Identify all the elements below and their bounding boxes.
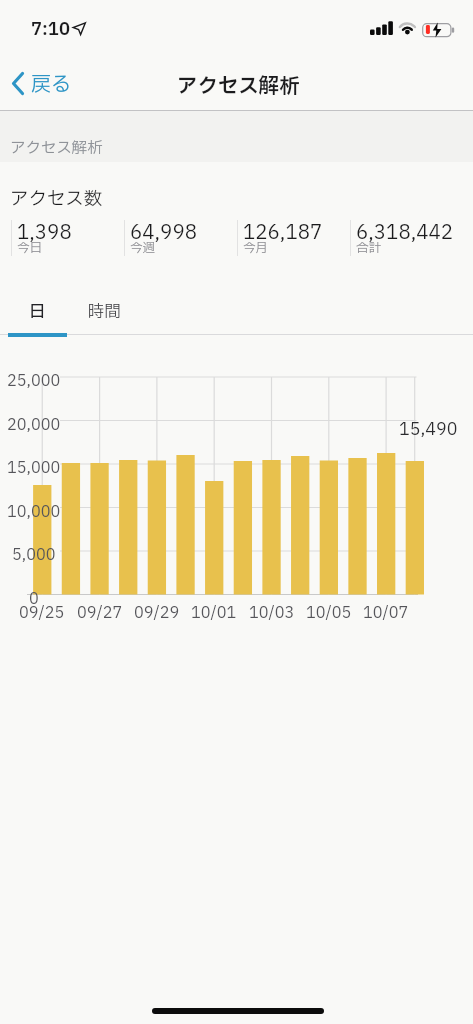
staticText: アクセス数 [10, 185, 103, 213]
staticText: 日 [29, 300, 46, 325]
staticText: 10/05 [306, 602, 352, 625]
staticText: 15,490 [399, 417, 458, 442]
staticText: 7:10 [31, 16, 70, 42]
staticText: 15,000 [7, 457, 61, 480]
staticText: 10/01 [191, 602, 237, 625]
staticText: 10/03 [249, 602, 295, 625]
staticText: 0 [29, 588, 39, 611]
staticText: 合計 [356, 239, 382, 258]
staticText: 今週 [130, 239, 156, 258]
button[interactable]: 日 [8, 293, 67, 332]
staticText: 20,000 [7, 414, 61, 437]
staticText: アクセス解析 [177, 71, 300, 102]
button[interactable]: 時間 [75, 293, 134, 332]
staticText: 5,000 [12, 544, 56, 567]
staticText: 09/25 [19, 602, 65, 625]
staticText: 6,318,442 [356, 218, 454, 247]
staticText: 戻る [31, 70, 71, 100]
staticText: 10,000 [7, 501, 61, 524]
button[interactable]: 戻る [4, 64, 82, 106]
staticText: 10/07 [363, 602, 409, 625]
staticText: 25,000 [7, 370, 61, 393]
staticText: 126,187 [243, 218, 323, 247]
staticText: アクセス解析 [10, 137, 103, 160]
staticText: 今月 [243, 239, 269, 258]
staticText: 時間 [88, 300, 121, 325]
staticText: 09/27 [77, 602, 123, 625]
staticText: 今日 [17, 239, 43, 258]
staticText: 09/29 [134, 602, 180, 625]
staticText: 1,398 [17, 218, 72, 247]
staticText: 64,998 [130, 218, 197, 247]
